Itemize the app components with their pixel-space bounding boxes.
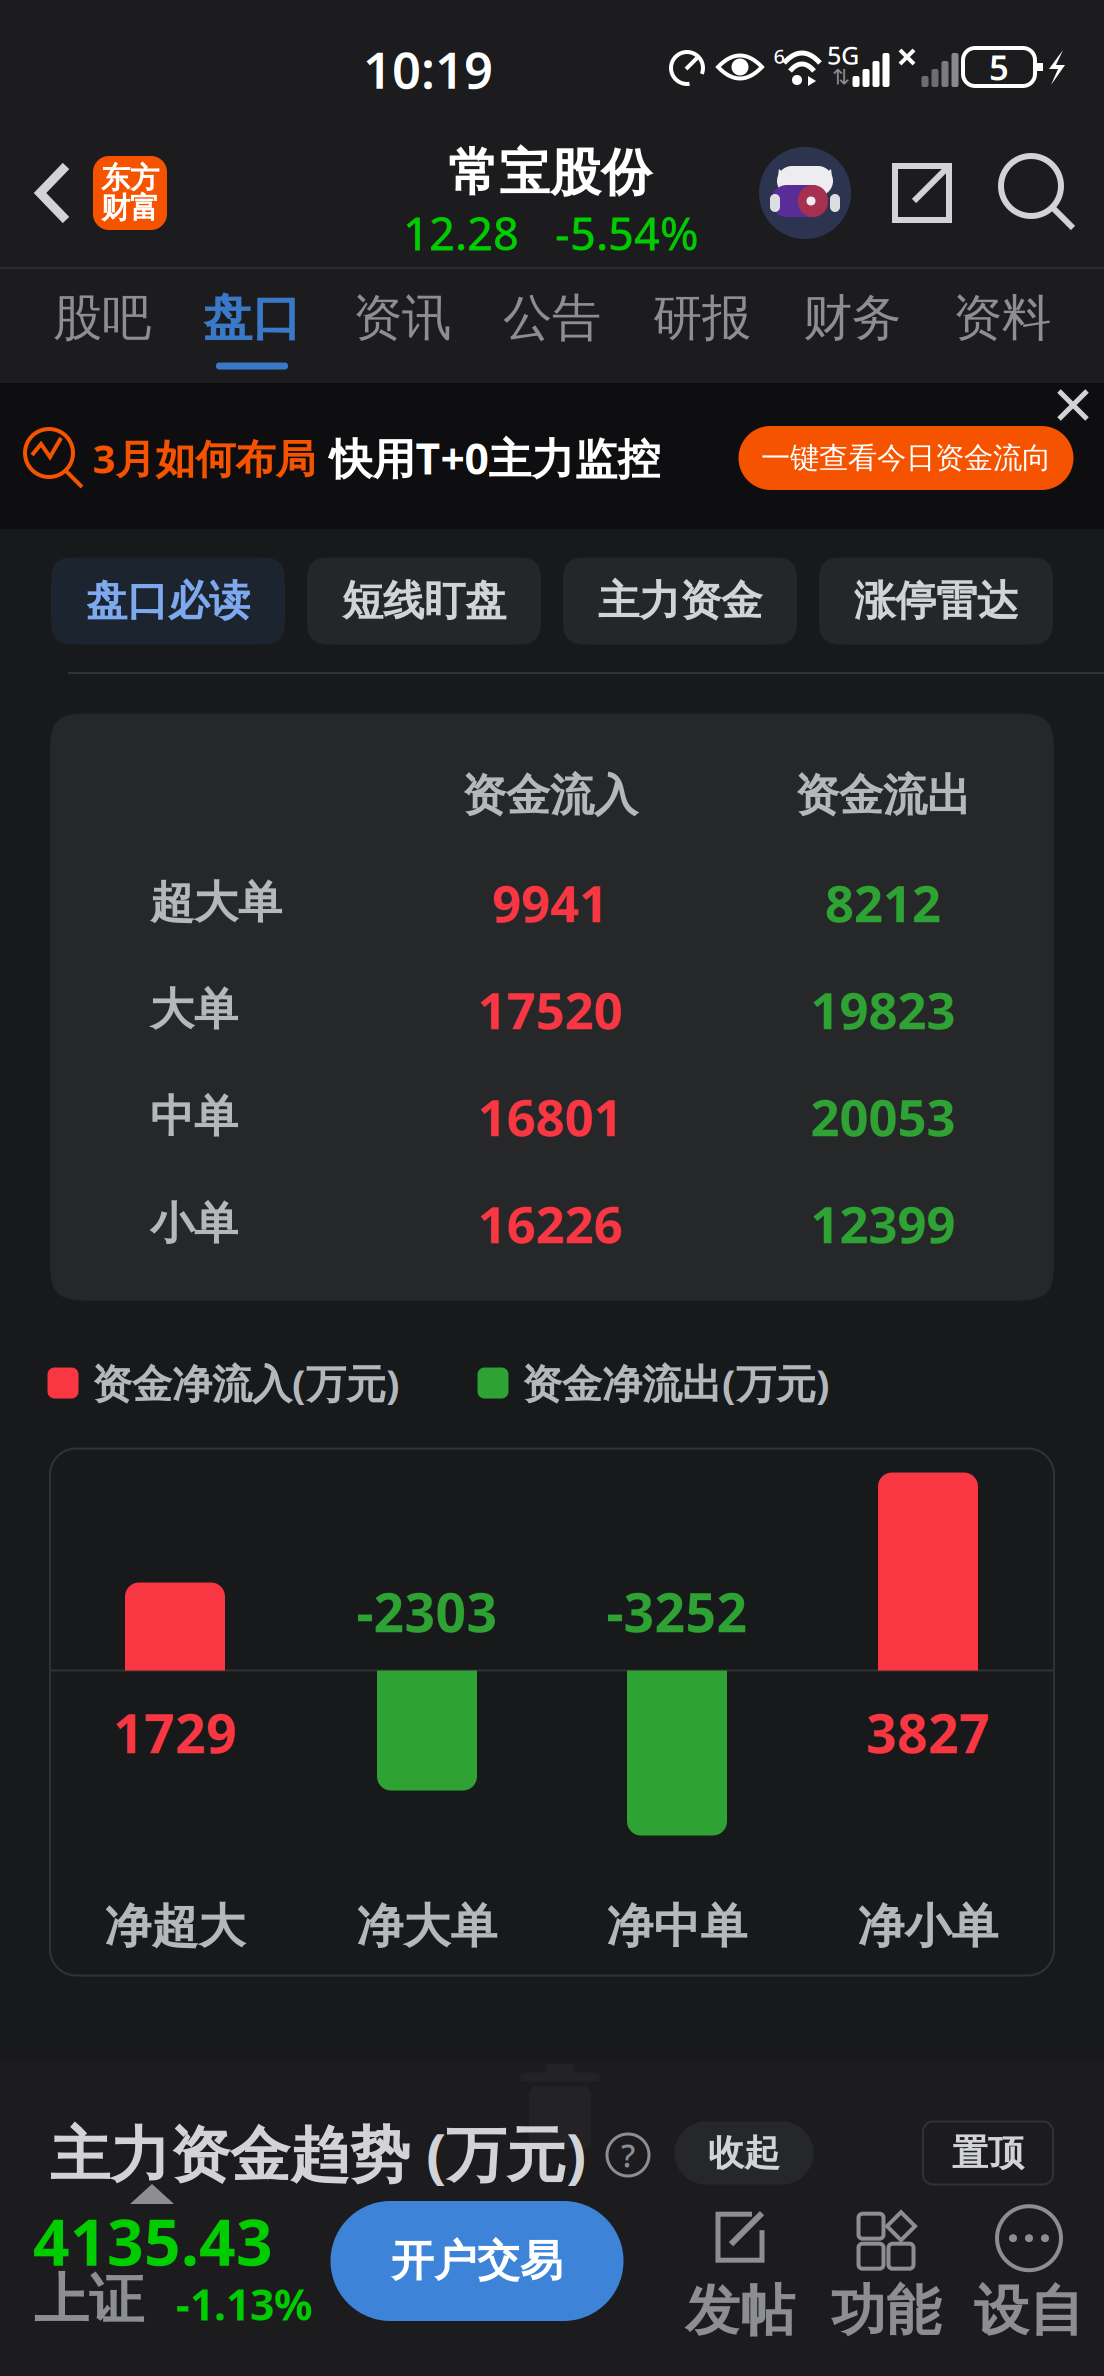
staticText: 9941 <box>492 869 608 936</box>
staticText: 资金流入 <box>462 768 638 822</box>
staticText: 东方 <box>101 160 159 196</box>
staticText: 研报 <box>653 288 751 348</box>
button[interactable]: AI assistant <box>759 147 851 239</box>
button[interactable]: 主力资金 <box>563 557 797 644</box>
button[interactable]: 涨停雷达 <box>819 557 1053 644</box>
staticText: 盘口 <box>203 288 301 348</box>
staticText: 资金净流出(万元) <box>522 1356 830 1409</box>
button[interactable]: 资料 <box>932 267 1072 382</box>
staticText: 8212 <box>825 869 941 936</box>
staticText: 3月如何布局 <box>92 431 315 484</box>
staticText: 净大单 <box>356 1898 497 1955</box>
staticText: 发帖 <box>685 2277 795 2344</box>
staticText: 17520 <box>477 976 622 1043</box>
staticText: 涨停雷达 <box>854 576 1018 626</box>
staticText: 20053 <box>810 1083 955 1150</box>
staticText: 6 <box>773 43 784 69</box>
staticText: 开户交易 <box>391 2235 563 2287</box>
staticText: ⇅ <box>832 65 850 89</box>
staticText: 12.28 <box>403 203 519 263</box>
button[interactable]: 设自 <box>959 2206 1099 2346</box>
staticText: -2303 <box>356 1576 497 1647</box>
staticText: 常宝股份 <box>448 142 652 204</box>
staticText: 短线盯盘 <box>342 576 506 626</box>
staticText: 大单 <box>150 982 238 1036</box>
button[interactable]: 短线盯盘 <box>307 557 541 644</box>
staticText: 一键查看今日资金流向 <box>761 440 1051 476</box>
staticText: 12399 <box>810 1190 955 1257</box>
staticText: 资金净流入(万元) <box>92 1356 400 1409</box>
button[interactable]: East Money <box>93 156 167 230</box>
staticText: 净中单 <box>606 1898 747 1955</box>
staticText: 公告 <box>503 288 601 348</box>
staticText: 设自 <box>974 2277 1084 2344</box>
button[interactable]: 财务 <box>782 267 922 382</box>
button[interactable]: 开户交易 <box>330 2201 623 2321</box>
staticText: 5 <box>989 44 1009 90</box>
button[interactable]: 发帖 <box>670 2206 810 2346</box>
button[interactable]: 研报 <box>632 267 772 382</box>
staticText: 置顶 <box>952 2131 1024 2175</box>
button[interactable]: 收起 <box>674 2121 813 2184</box>
staticText: 上证 <box>34 2266 144 2333</box>
button[interactable]: 功能 <box>816 2206 956 2346</box>
staticText: 10:19 <box>363 35 493 103</box>
staticText: 功能 <box>831 2277 941 2344</box>
staticText: 19823 <box>810 976 955 1043</box>
staticText: 收起 <box>708 2131 780 2175</box>
button[interactable]: 资讯 <box>332 267 472 382</box>
staticText: 主力资金趋势 (万元) <box>50 2113 586 2193</box>
staticText: 16226 <box>477 1190 622 1257</box>
staticText: 中单 <box>150 1089 238 1143</box>
staticText: 1729 <box>113 1697 237 1768</box>
button[interactable]: 盘口 <box>182 267 322 382</box>
button[interactable]: Help <box>607 2134 649 2176</box>
button[interactable]: 股吧 <box>32 267 172 382</box>
staticText: 股吧 <box>53 288 151 348</box>
staticText: 净小单 <box>857 1898 998 1955</box>
staticText: ? <box>621 2134 635 2176</box>
button[interactable]: 盘口必读 <box>51 557 285 644</box>
staticText: -3252 <box>606 1576 747 1647</box>
button[interactable]: 公告 <box>482 267 622 382</box>
button[interactable]: 一键查看今日资金流向 <box>738 426 1073 490</box>
button[interactable]: Close ad <box>1050 382 1096 428</box>
staticText: 资讯 <box>353 288 451 348</box>
staticText: 5G <box>827 38 859 72</box>
button[interactable]: Share <box>882 153 962 233</box>
staticText: 主力资金 <box>598 576 762 626</box>
staticText: 资料 <box>953 288 1051 348</box>
button[interactable]: 置顶 <box>923 2121 1053 2184</box>
staticText: 资金流出 <box>795 768 971 822</box>
staticText: -5.54% <box>555 203 699 263</box>
button[interactable]: Search <box>995 150 1081 236</box>
staticText: 净超大 <box>104 1898 245 1955</box>
staticText: -1.13% <box>176 2276 312 2332</box>
staticText: 3827 <box>866 1697 990 1768</box>
staticText: 超大单 <box>150 875 282 929</box>
staticText: 16801 <box>477 1083 622 1150</box>
staticText: 快用T+0主力监控 <box>329 430 660 486</box>
staticText: 财务 <box>803 288 901 348</box>
staticText: 小单 <box>150 1196 238 1250</box>
staticText: 财富 <box>101 190 159 226</box>
staticText: 4135.43 <box>33 2198 273 2283</box>
button[interactable]: Back <box>19 147 89 239</box>
staticText: 盘口必读 <box>86 576 250 626</box>
